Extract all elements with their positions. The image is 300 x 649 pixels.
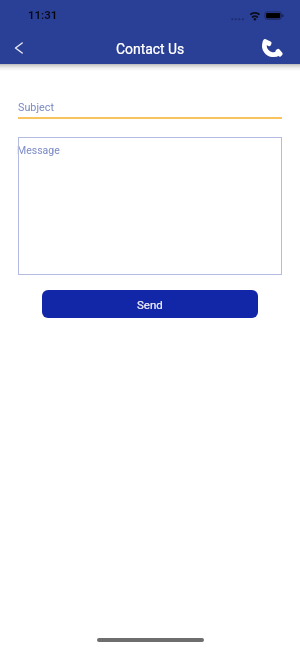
- button[interactable]: Call: [259, 34, 285, 60]
- staticText: 11:31: [28, 8, 58, 21]
- staticText: Contact Us: [116, 41, 185, 57]
- button[interactable]: Message: [18, 137, 282, 275]
- button[interactable]: Send: [42, 290, 258, 318]
- staticText: Subject: [18, 101, 54, 114]
- button[interactable]: Back: [5, 34, 33, 62]
- button[interactable]: Subject: [18, 100, 282, 119]
- staticText: Send: [137, 298, 163, 311]
- staticText: Message: [17, 144, 60, 156]
